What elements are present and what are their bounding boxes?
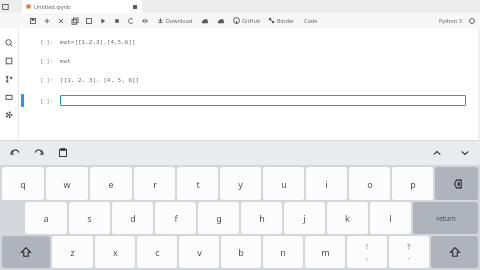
staticText: c <box>155 246 160 258</box>
button[interactable]: Cloud sync <box>215 15 227 27</box>
button[interactable]: z <box>52 236 93 268</box>
staticText: h <box>259 212 265 224</box>
button[interactable]: [ ]: <box>18 91 480 110</box>
button[interactable]: j <box>284 202 325 234</box>
button[interactable]: o <box>349 167 390 200</box>
button[interactable]: Cloud sync <box>199 15 211 27</box>
button[interactable]: Git <box>0 70 18 88</box>
button[interactable]: ? <box>389 236 429 268</box>
button[interactable]: Run <box>96 14 110 28</box>
button[interactable]: Paste <box>54 144 72 162</box>
staticText: m <box>321 246 330 258</box>
staticText: i <box>325 178 328 190</box>
button[interactable]: Binder <box>267 17 296 24</box>
button[interactable]: i <box>306 167 347 200</box>
button[interactable]: Add cell <box>40 14 54 28</box>
button[interactable]: [ ]: <box>18 51 480 70</box>
staticText: [ ]: <box>40 97 54 104</box>
staticText: n <box>280 246 286 258</box>
button[interactable]: GitHub <box>232 17 262 24</box>
button[interactable]: d <box>112 202 153 234</box>
staticText: GitHub <box>242 17 261 24</box>
staticText: ? <box>407 242 411 252</box>
staticText: mat <box>60 57 71 65</box>
staticText: [ ]: <box>40 57 54 64</box>
staticText: s <box>87 212 92 224</box>
button[interactable]: x <box>95 236 135 268</box>
button[interactable]: Restart and run all <box>138 14 152 28</box>
staticText: z <box>70 246 75 258</box>
button[interactable]: Save <box>26 14 40 28</box>
button[interactable]: v <box>179 236 219 268</box>
button[interactable]: m <box>305 236 345 268</box>
button[interactable]: Next <box>456 144 474 162</box>
staticText: ! <box>366 242 368 252</box>
button[interactable]: [ ]: <box>18 32 480 51</box>
staticText: Untitled.ipynb <box>34 3 71 10</box>
button[interactable]: Running <box>0 52 18 70</box>
staticText: mat=[[1,2,3],[4,5,6]] <box>60 38 136 46</box>
button[interactable]: Kernel status <box>467 16 476 25</box>
button[interactable]: y <box>220 167 261 200</box>
button[interactable]: l <box>370 202 411 234</box>
button[interactable]: s <box>69 202 110 234</box>
button[interactable]: w <box>46 167 88 200</box>
button[interactable]: return <box>413 202 478 234</box>
button[interactable]: Restart <box>124 14 138 28</box>
button[interactable]: Untitled.ipynb <box>22 0 142 13</box>
button[interactable]: Files <box>0 88 18 106</box>
button[interactable]: f <box>155 202 196 234</box>
staticText: l <box>389 212 392 224</box>
button[interactable]: Code <box>302 17 320 24</box>
staticText: b <box>238 246 244 258</box>
button[interactable]: Copy <box>68 14 82 28</box>
staticText: a <box>43 212 49 224</box>
button[interactable]: r <box>134 167 175 200</box>
button[interactable]: Shift <box>2 236 50 268</box>
staticText: w <box>63 178 71 190</box>
button[interactable]: Search <box>0 34 18 52</box>
button[interactable]: Python 3 <box>437 17 464 24</box>
button[interactable]: ! <box>347 236 387 268</box>
staticText: , <box>366 252 368 262</box>
button[interactable]: k <box>327 202 368 234</box>
staticText: r <box>153 178 157 190</box>
staticText: e <box>108 178 114 190</box>
staticText: [ ]: <box>40 38 54 45</box>
button[interactable]: Paste <box>82 14 96 28</box>
staticText: return <box>436 214 456 223</box>
button[interactable]: Download <box>156 17 194 24</box>
staticText: Binder <box>277 17 295 24</box>
button[interactable]: Shift <box>431 236 478 268</box>
staticText: Download <box>166 17 193 24</box>
button[interactable]: q <box>2 167 44 200</box>
button[interactable]: Stop <box>110 14 124 28</box>
button[interactable]: p <box>392 167 433 200</box>
staticText: [[1, 2, 3], [4, 5, 6]] <box>60 76 140 84</box>
button[interactable]: g <box>198 202 239 234</box>
staticText: q <box>20 178 26 190</box>
button[interactable]: c <box>137 236 177 268</box>
button[interactable]: t <box>177 167 218 200</box>
staticText: p <box>410 178 416 190</box>
button[interactable]: a <box>25 202 67 234</box>
button[interactable]: Extensions <box>0 106 18 124</box>
staticText: [ ]: <box>40 76 54 83</box>
button[interactable]: h <box>241 202 282 234</box>
button[interactable]: u <box>263 167 304 200</box>
staticText: . <box>408 252 410 262</box>
button[interactable]: Previous <box>428 144 446 162</box>
button[interactable]: b <box>221 236 261 268</box>
button[interactable]: e <box>90 167 132 200</box>
staticText: x <box>113 246 118 258</box>
button[interactable]: n <box>263 236 303 268</box>
staticText: j <box>303 212 306 224</box>
staticText: f <box>174 212 178 224</box>
button[interactable]: Redo <box>30 144 48 162</box>
button[interactable]: Undo <box>6 144 24 162</box>
button[interactable]: Backspace <box>435 167 478 200</box>
staticText: u <box>281 178 287 190</box>
button[interactable]: Close tab <box>131 3 138 10</box>
staticText: v <box>197 246 202 258</box>
button[interactable]: Cut <box>54 14 68 28</box>
